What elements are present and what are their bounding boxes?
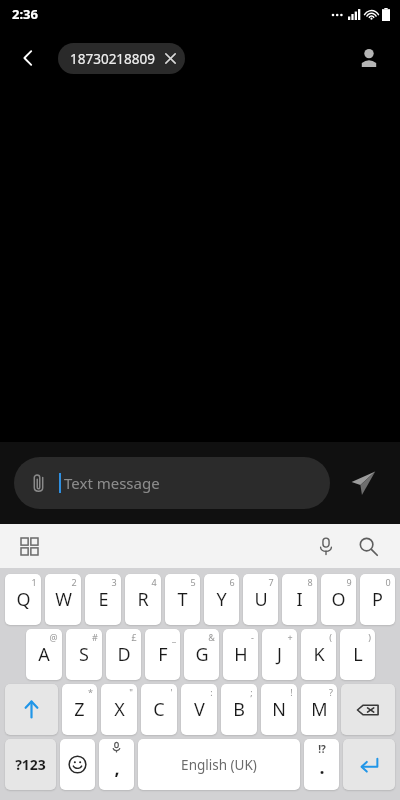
button[interactable]: Send [340,460,386,506]
staticText: C [153,697,165,722]
button[interactable]: J [262,629,297,680]
staticText: Text message [64,473,160,493]
staticText: A [38,642,50,667]
staticText: J [277,642,282,667]
staticText: # [92,631,98,643]
staticText: D [117,642,131,667]
staticText: 18730218809 [70,50,155,68]
button[interactable]: P [360,574,395,625]
staticText: X [114,697,125,722]
button[interactable]: 18730218809 [58,43,185,74]
staticText: + [287,631,293,643]
staticText: £ [131,631,137,643]
staticText: 2 [71,576,77,588]
button[interactable]: Enter [343,739,395,790]
staticText: ? [329,686,333,698]
button[interactable]: !? [304,739,339,790]
staticText: O [331,587,346,612]
button[interactable]: X [101,684,137,735]
staticText: N [272,697,286,722]
staticText: & [208,631,215,643]
staticText: !? [318,742,326,756]
button[interactable]: Q [5,574,41,625]
staticText: 9 [346,576,352,588]
staticText: @ [49,631,58,643]
staticText: 0 [385,576,391,588]
staticText: 2:36 [12,5,38,23]
button[interactable] [5,684,58,735]
staticText: S [79,642,89,667]
staticText: . [319,755,325,780]
button[interactable]: Contact [348,37,390,79]
button[interactable]: O [321,574,356,625]
staticText: ?123 [15,755,46,774]
staticText: _ [172,631,176,643]
button[interactable]: M [301,684,337,735]
button[interactable]: K [301,629,336,680]
button[interactable]: ?123 [5,739,56,790]
button[interactable]: English (UK) [138,739,300,790]
button[interactable]: Text message [14,457,330,509]
staticText: English (UK) [181,756,257,774]
staticText: L [353,642,363,667]
button[interactable]: I [282,574,317,625]
button[interactable]: Backspace [341,684,395,735]
button[interactable]: Emoji [60,739,95,790]
staticText: , [114,756,120,781]
staticText: : [210,686,213,698]
staticText: K [313,642,325,667]
button[interactable]: T [165,574,200,625]
staticText: 1 [31,576,37,588]
staticText: - [251,631,254,643]
button[interactable]: H [223,629,258,680]
staticText: P [372,587,383,612]
staticText: E [98,587,109,612]
staticText: Z [74,697,85,722]
button[interactable]: F [145,629,180,680]
button[interactable]: Keyboard modes [12,529,46,563]
button[interactable]: N [261,684,297,735]
staticText: 7 [268,576,274,588]
button[interactable]: Back [8,38,48,78]
staticText: I [296,587,303,612]
staticText: * [88,686,93,698]
staticText: F [158,642,168,667]
button[interactable]: L [340,629,375,680]
staticText: W [55,587,72,612]
staticText: U [254,587,268,612]
button[interactable]: B [221,684,257,735]
button[interactable]: , [99,739,134,790]
button[interactable]: R [125,574,161,625]
button[interactable]: Voice input [308,528,344,564]
staticText: R [137,587,149,612]
staticText: M [311,697,328,722]
button[interactable]: W [45,574,81,625]
staticText: V [194,697,205,722]
staticText: 8 [307,576,313,588]
button[interactable]: G [184,629,219,680]
staticText: H [234,642,248,667]
button[interactable]: Search [350,528,386,564]
button[interactable]: E [85,574,121,625]
staticText: T [177,587,188,612]
staticText: Q [16,587,31,612]
staticText: 4 [151,576,157,588]
staticText: G [195,642,209,667]
staticText: 5 [190,576,196,588]
button[interactable]: A [26,629,62,680]
button[interactable]: V [181,684,217,735]
staticText: 6 [229,576,235,588]
button[interactable]: C [141,684,177,735]
staticText: B [233,697,245,722]
button[interactable]: Y [204,574,239,625]
other: Backspace [341,684,395,735]
button[interactable]: D [106,629,141,680]
button[interactable]: U [243,574,278,625]
button[interactable]: Z [62,684,97,735]
other: Enter [343,739,395,790]
button[interactable]: S [66,629,102,680]
staticText: ( [329,631,332,643]
staticText: ; [250,686,253,698]
staticText: ! [290,686,293,698]
other: Emoji [60,739,95,790]
